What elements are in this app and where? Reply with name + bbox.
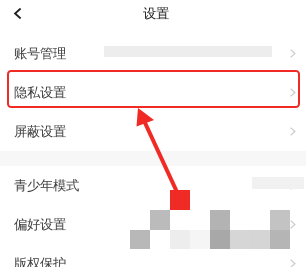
button[interactable]: 屏蔽设置 [0,112,306,151]
staticText: 设置 [143,5,169,22]
staticText: 账号管理 [14,45,66,62]
button[interactable]: 青少年模式 [0,166,306,205]
staticText: 青少年模式 [14,177,79,194]
button[interactable]: 版权保护 [0,244,306,267]
button[interactable]: 隐私设置 [0,73,306,112]
staticText: 隐私设置 [14,84,66,101]
staticText: 偏好设置 [14,216,66,233]
button[interactable]: 账号管理 [0,34,306,73]
button[interactable]: 偏好设置 [0,205,306,244]
staticText: 版权保护 [14,255,66,267]
button[interactable]: Back [0,0,36,27]
staticText: 屏蔽设置 [14,123,66,140]
